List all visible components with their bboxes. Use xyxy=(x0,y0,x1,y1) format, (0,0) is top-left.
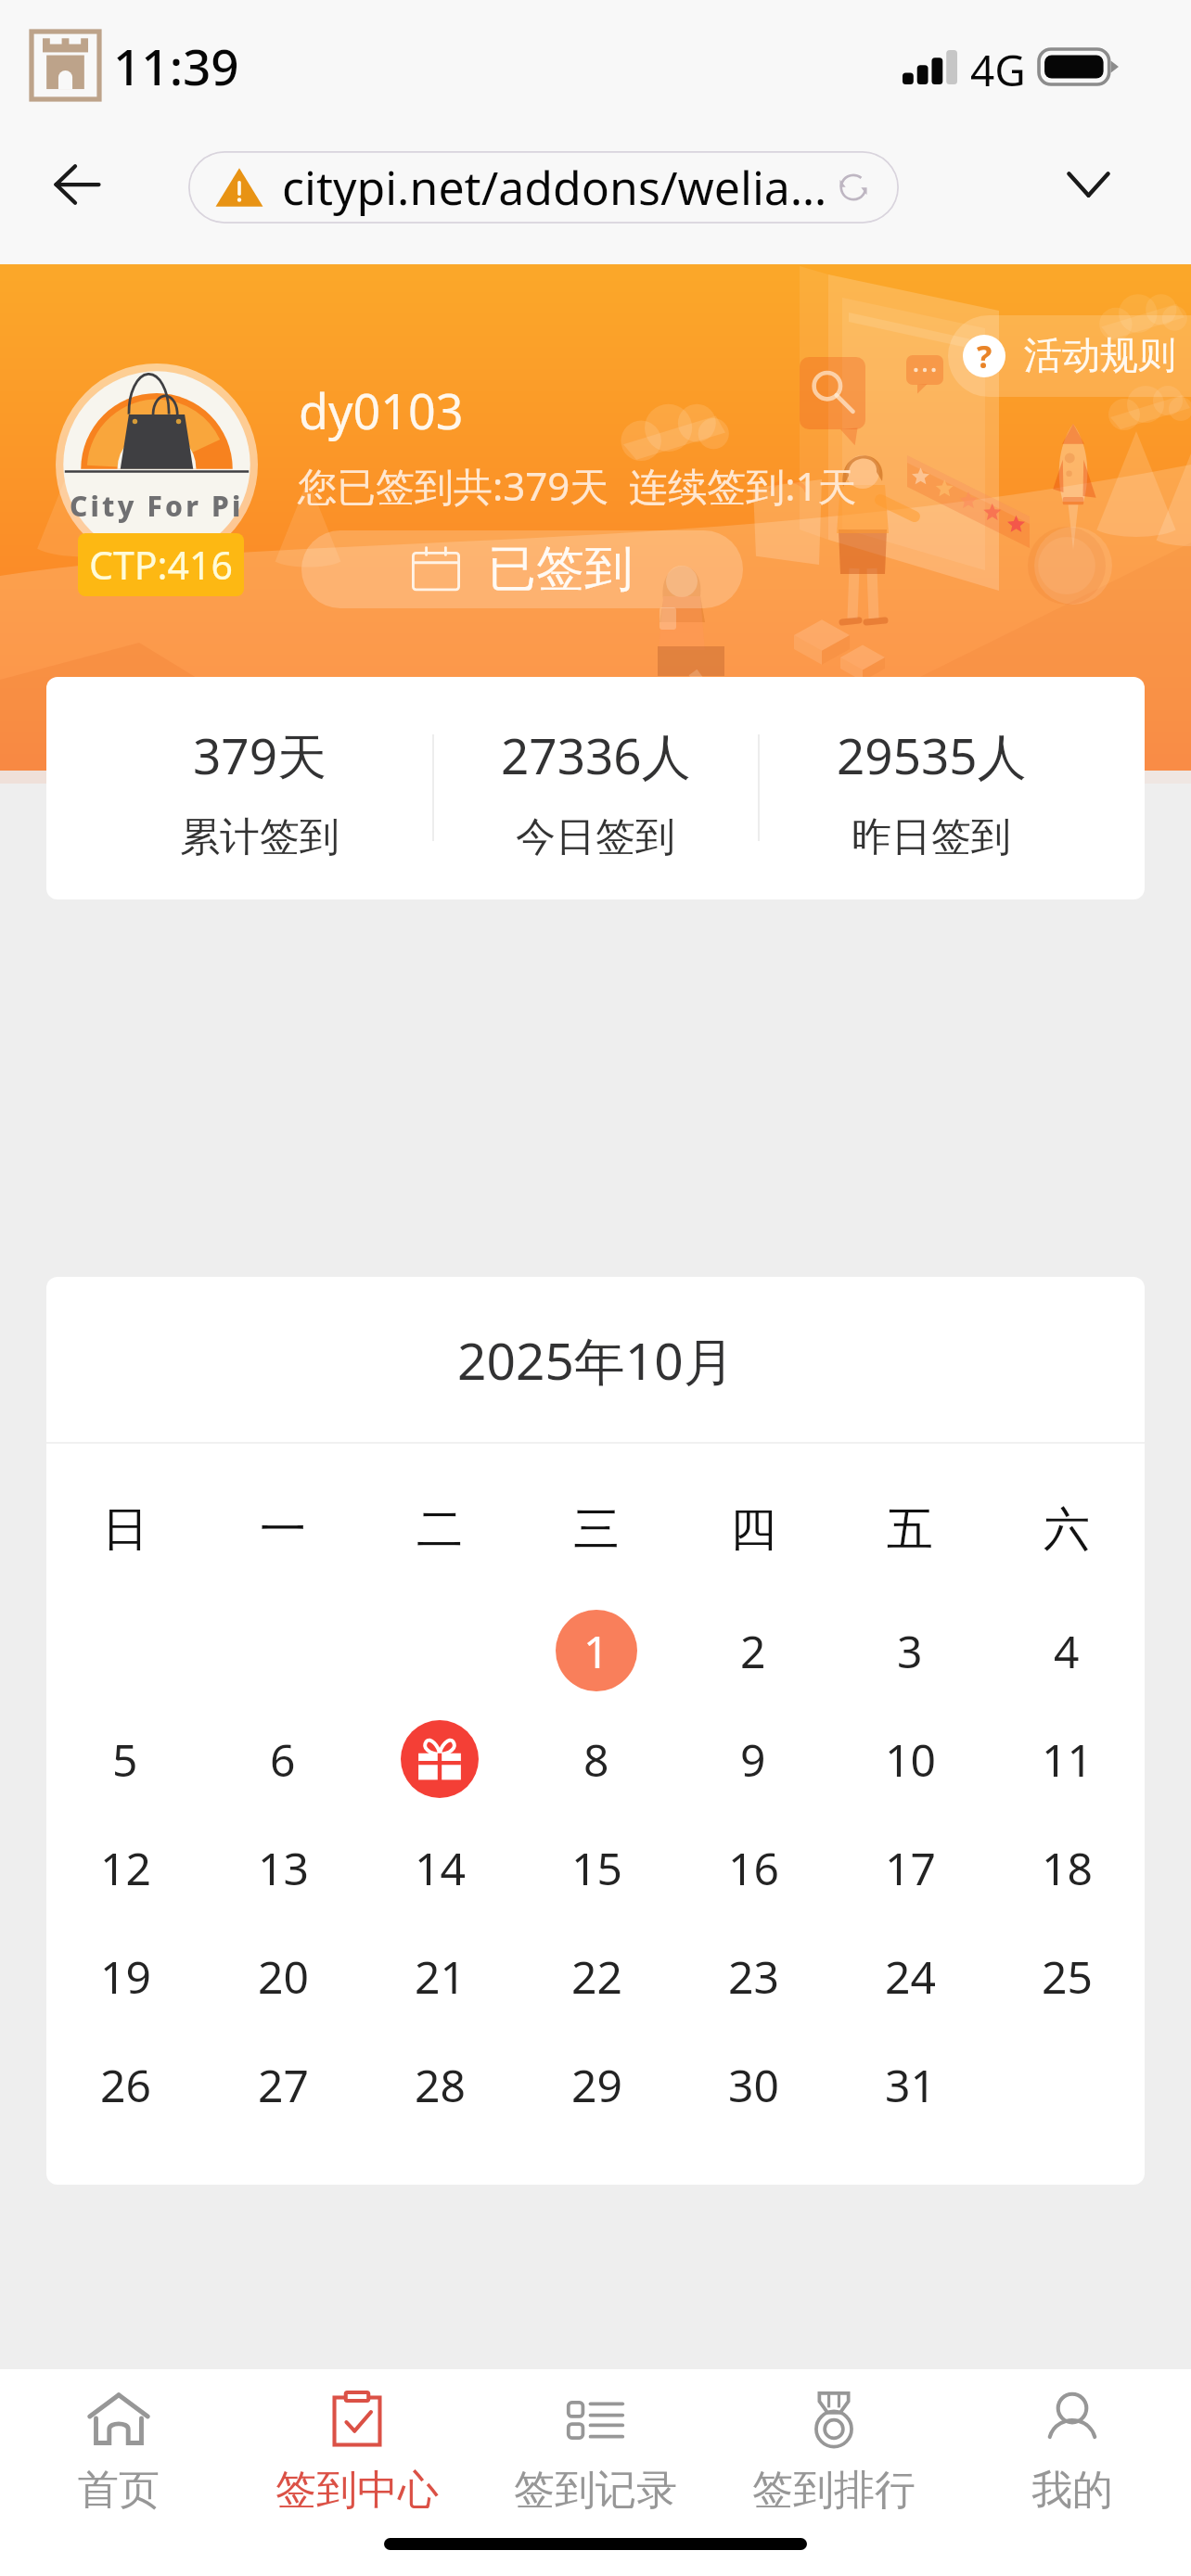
staticText: 已签到 xyxy=(488,539,633,600)
button[interactable]: 9 xyxy=(712,1718,794,1800)
button[interactable]: 23 xyxy=(712,1935,794,2017)
button[interactable]: ? xyxy=(948,315,1191,397)
staticText: 4G xyxy=(970,41,1026,99)
staticText: 18 xyxy=(1042,1838,1093,1898)
staticText: 22 xyxy=(571,1946,622,2007)
staticText: ? xyxy=(977,335,992,377)
staticText: 21 xyxy=(415,1946,466,2007)
button[interactable]: More xyxy=(1044,140,1133,229)
button[interactable]: 25 xyxy=(1026,1935,1108,2017)
button[interactable]: 22 xyxy=(556,1935,637,2017)
button[interactable]: 29 xyxy=(556,2044,637,2125)
staticText: 19 xyxy=(100,1946,151,2007)
staticText: 五 xyxy=(887,1500,933,1559)
button[interactable]: 379天 xyxy=(46,677,492,862)
staticText: 12 xyxy=(100,1838,151,1898)
staticText: 6 xyxy=(270,1729,296,1790)
button[interactable]: 14 xyxy=(399,1827,480,1908)
button[interactable]: 27336人 xyxy=(364,677,827,862)
button[interactable]: 签到中心 xyxy=(237,2369,476,2576)
staticText: 29535人 xyxy=(837,721,1027,788)
staticText: 17 xyxy=(885,1838,936,1898)
staticText: 23 xyxy=(728,1946,779,2007)
staticText: 签到记录 xyxy=(514,2465,677,2516)
button[interactable]: Back xyxy=(32,140,122,229)
button[interactable]: 首页 xyxy=(0,2369,237,2576)
staticText: 15 xyxy=(571,1838,622,1898)
staticText: 昨日签到 xyxy=(852,812,1011,862)
button[interactable]: 2 xyxy=(712,1610,794,1691)
button[interactable]: 11 xyxy=(1026,1718,1108,1800)
staticText: 签到排行 xyxy=(752,2465,916,2516)
staticText: 27336人 xyxy=(501,721,691,788)
staticText: 5 xyxy=(112,1729,138,1790)
button[interactable]: 20 xyxy=(242,1935,324,2017)
staticText: 10 xyxy=(885,1729,936,1790)
staticText: citypi.net/addons/welia… xyxy=(282,156,827,219)
staticText: 2025年10月 xyxy=(457,1325,735,1395)
button[interactable]: 10 xyxy=(869,1718,951,1800)
staticText: dy0103 xyxy=(299,377,464,443)
button[interactable]: 24 xyxy=(869,1935,951,2017)
staticText: 六 xyxy=(1044,1500,1090,1559)
button[interactable]: 28 xyxy=(399,2044,480,2125)
staticText: 29 xyxy=(571,2055,622,2115)
button[interactable]: Gift xyxy=(401,1720,479,1798)
button[interactable]: 已签到 xyxy=(301,530,743,608)
staticText: 活动规则 xyxy=(1024,332,1176,380)
staticText: 3 xyxy=(897,1621,923,1681)
button[interactable]: citypi.net/addons/welia… xyxy=(188,151,899,223)
staticText: 24 xyxy=(885,1946,936,2007)
button[interactable]: 1 xyxy=(556,1610,637,1691)
staticText: 二 xyxy=(416,1500,463,1559)
staticText: 2 xyxy=(740,1621,766,1681)
button[interactable]: 15 xyxy=(556,1827,637,1908)
button[interactable]: 16 xyxy=(712,1827,794,1908)
button[interactable]: 8 xyxy=(556,1718,637,1800)
staticText: 累计签到 xyxy=(180,812,339,862)
button[interactable]: 30 xyxy=(712,2044,794,2125)
staticText: 4 xyxy=(1054,1621,1080,1681)
staticText: 16 xyxy=(728,1838,779,1898)
staticText: 26 xyxy=(100,2055,151,2115)
button[interactable]: 13 xyxy=(242,1827,324,1908)
button[interactable]: 3 xyxy=(869,1610,951,1691)
button[interactable]: 31 xyxy=(869,2044,951,2125)
button[interactable]: 12 xyxy=(84,1827,166,1908)
button[interactable]: 18 xyxy=(1026,1827,1108,1908)
button[interactable]: 26 xyxy=(84,2044,166,2125)
staticText: CTP:416 xyxy=(89,539,233,591)
button[interactable]: 签到排行 xyxy=(714,2369,953,2576)
staticText: 31 xyxy=(885,2055,936,2115)
staticText: 日 xyxy=(102,1500,148,1559)
button[interactable]: 5 xyxy=(84,1718,166,1800)
button[interactable]: 我的 xyxy=(953,2369,1191,2576)
button[interactable]: 4 xyxy=(1026,1610,1108,1691)
staticText: 四 xyxy=(730,1500,776,1559)
button[interactable]: 签到记录 xyxy=(476,2369,714,2576)
staticText: City For Pi xyxy=(70,487,244,525)
staticText: 30 xyxy=(728,2055,779,2115)
staticText: 8 xyxy=(583,1729,609,1790)
staticText: 14 xyxy=(415,1838,466,1898)
button[interactable]: 17 xyxy=(869,1827,951,1908)
staticText: 一 xyxy=(260,1500,306,1559)
staticText: 首页 xyxy=(78,2465,160,2516)
staticText: 379天 xyxy=(193,721,327,788)
staticText: 1 xyxy=(583,1621,609,1681)
staticText: 13 xyxy=(258,1838,309,1898)
button[interactable]: 19 xyxy=(84,1935,166,2017)
staticText: 27 xyxy=(258,2055,309,2115)
staticText: 签到中心 xyxy=(275,2465,439,2516)
staticText: 我的 xyxy=(1031,2465,1113,2516)
staticText: 25 xyxy=(1042,1946,1093,2007)
staticText: 28 xyxy=(415,2055,466,2115)
staticText: 11 xyxy=(1042,1729,1093,1790)
staticText: 9 xyxy=(740,1729,766,1790)
staticText: 今日签到 xyxy=(516,812,675,862)
button[interactable]: 6 xyxy=(242,1718,324,1800)
button[interactable]: 21 xyxy=(399,1935,480,2017)
button[interactable]: 29535人 xyxy=(699,677,1145,862)
staticText: 11:39 xyxy=(113,32,239,99)
button[interactable]: 27 xyxy=(242,2044,324,2125)
